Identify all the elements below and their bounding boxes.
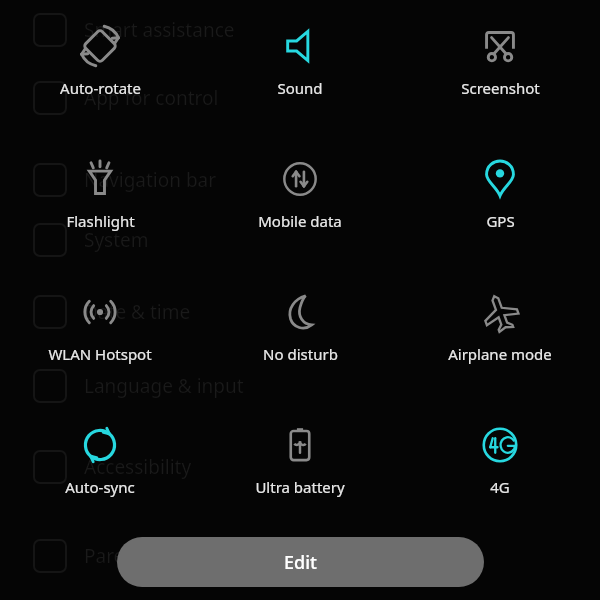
staticText: Language & input bbox=[84, 373, 244, 399]
staticText: Edit bbox=[284, 550, 317, 575]
staticText: WLAN Hotspot bbox=[48, 344, 152, 364]
staticText: Ultra battery bbox=[255, 477, 345, 497]
button[interactable]: Edit bbox=[117, 537, 484, 587]
button[interactable]: No disturb bbox=[200, 266, 400, 399]
button[interactable]: GPS bbox=[400, 133, 600, 266]
button[interactable]: Sound bbox=[200, 0, 400, 133]
staticText: Accessibility bbox=[84, 454, 192, 480]
staticText: Sound bbox=[277, 78, 323, 98]
staticText: GPS bbox=[486, 211, 515, 231]
button[interactable]: Screenshot bbox=[400, 0, 600, 133]
staticText: Auto-rotate bbox=[60, 78, 141, 98]
button[interactable]: Auto-sync bbox=[0, 399, 200, 532]
staticText: Navigation bar bbox=[84, 167, 217, 193]
button[interactable]: Auto-rotate bbox=[0, 0, 200, 133]
staticText: Smart assistance bbox=[84, 17, 235, 43]
staticText: Auto-sync bbox=[65, 477, 135, 497]
staticText: Screenshot bbox=[461, 78, 540, 98]
staticText: App for control bbox=[84, 85, 219, 111]
staticText: No disturb bbox=[263, 344, 338, 364]
staticText: Date & time bbox=[84, 299, 191, 325]
staticText: Mobile data bbox=[258, 211, 342, 231]
staticText: 4G bbox=[490, 477, 510, 497]
button[interactable]: Mobile data bbox=[200, 133, 400, 266]
button[interactable]: Ultra battery bbox=[200, 399, 400, 532]
button[interactable]: Airplane mode bbox=[400, 266, 600, 399]
staticText: System bbox=[84, 227, 149, 253]
button[interactable]: 4G bbox=[400, 399, 600, 532]
staticText: Parental bbox=[84, 543, 159, 569]
button[interactable]: WLAN Hotspot bbox=[0, 266, 200, 399]
button[interactable]: Flashlight bbox=[0, 133, 200, 266]
staticText: Airplane mode bbox=[448, 344, 552, 364]
staticText: Flashlight bbox=[66, 211, 135, 231]
